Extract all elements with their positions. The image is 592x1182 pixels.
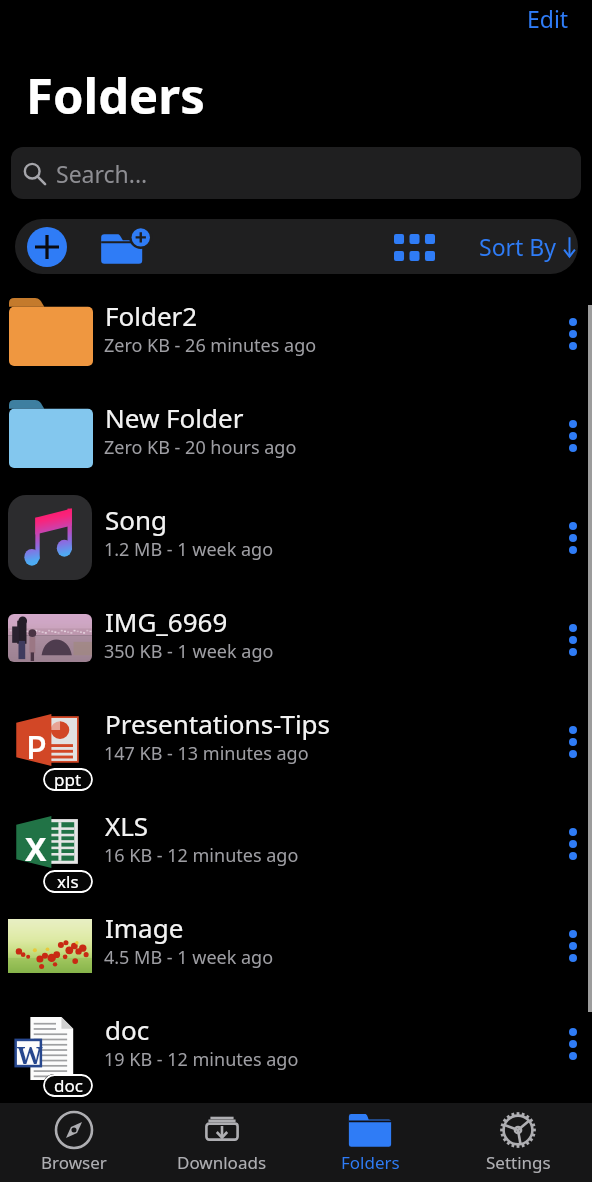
button[interactable]: More options xyxy=(550,907,592,1009)
button[interactable]: Folder2 xyxy=(0,295,592,397)
staticText: xls xyxy=(57,870,79,893)
button[interactable]: More options xyxy=(550,295,592,397)
button[interactable]: Settings xyxy=(444,1103,592,1182)
staticText: Zero KB - 26 minutes ago xyxy=(104,333,317,358)
staticText: Sort By xyxy=(479,231,557,262)
staticText: Browser xyxy=(41,1151,107,1174)
staticText: Presentations-Tips xyxy=(105,706,331,741)
button[interactable]: More options xyxy=(550,805,592,907)
button[interactable]: IMG_6969 xyxy=(0,601,592,703)
staticText: Folder2 xyxy=(105,298,198,333)
staticText: Song xyxy=(105,502,168,537)
staticText: 1.2 MB - 1 week ago xyxy=(104,537,274,562)
staticText: ppt xyxy=(54,768,82,791)
button[interactable]: Add xyxy=(27,227,67,267)
staticText: New Folder xyxy=(105,400,244,435)
staticText: 350 KB - 1 week ago xyxy=(104,639,274,664)
staticText: doc xyxy=(105,1012,150,1047)
staticText: XLS xyxy=(105,808,149,843)
button[interactable]: More options xyxy=(550,601,592,703)
staticText: W xyxy=(17,1038,43,1067)
staticText: doc xyxy=(54,1074,83,1097)
staticText: 147 KB - 13 minutes ago xyxy=(104,741,309,766)
staticText: 19 KB - 12 minutes ago xyxy=(104,1047,299,1072)
button[interactable]: Sort By xyxy=(465,219,577,274)
button[interactable]: Browser xyxy=(0,1103,148,1182)
staticText: Downloads xyxy=(177,1151,267,1174)
button[interactable]: New folder xyxy=(99,227,171,267)
button[interactable]: More options xyxy=(550,397,592,499)
button[interactable]: W xyxy=(0,1009,592,1103)
staticText: P xyxy=(26,725,47,759)
button[interactable]: More options xyxy=(550,1009,592,1103)
staticText: Image xyxy=(105,910,184,945)
button[interactable]: New Folder xyxy=(0,397,592,499)
staticText: Folders xyxy=(26,62,205,129)
staticText: 4.5 MB - 1 week ago xyxy=(104,945,274,970)
button[interactable]: Edit xyxy=(517,0,579,40)
button[interactable]: More options xyxy=(550,703,592,805)
staticText: Zero KB - 20 hours ago xyxy=(104,435,297,460)
button[interactable]: Grid view xyxy=(383,227,445,267)
button[interactable]: Search... xyxy=(11,147,581,199)
staticText: Folders xyxy=(341,1151,400,1174)
staticText: X xyxy=(25,827,47,861)
button[interactable]: X xyxy=(0,805,592,907)
staticText: 16 KB - 12 minutes ago xyxy=(104,843,299,868)
button[interactable]: More options xyxy=(550,499,592,601)
staticText: Search... xyxy=(56,158,148,189)
button[interactable]: P xyxy=(0,703,592,805)
staticText: IMG_6969 xyxy=(105,604,228,639)
button[interactable]: Folders xyxy=(296,1103,444,1182)
staticText: Settings xyxy=(486,1151,551,1174)
button[interactable]: Song xyxy=(0,499,592,601)
staticText: Edit xyxy=(527,3,569,34)
button[interactable]: Downloads xyxy=(148,1103,296,1182)
button[interactable]: Image xyxy=(0,907,592,1009)
